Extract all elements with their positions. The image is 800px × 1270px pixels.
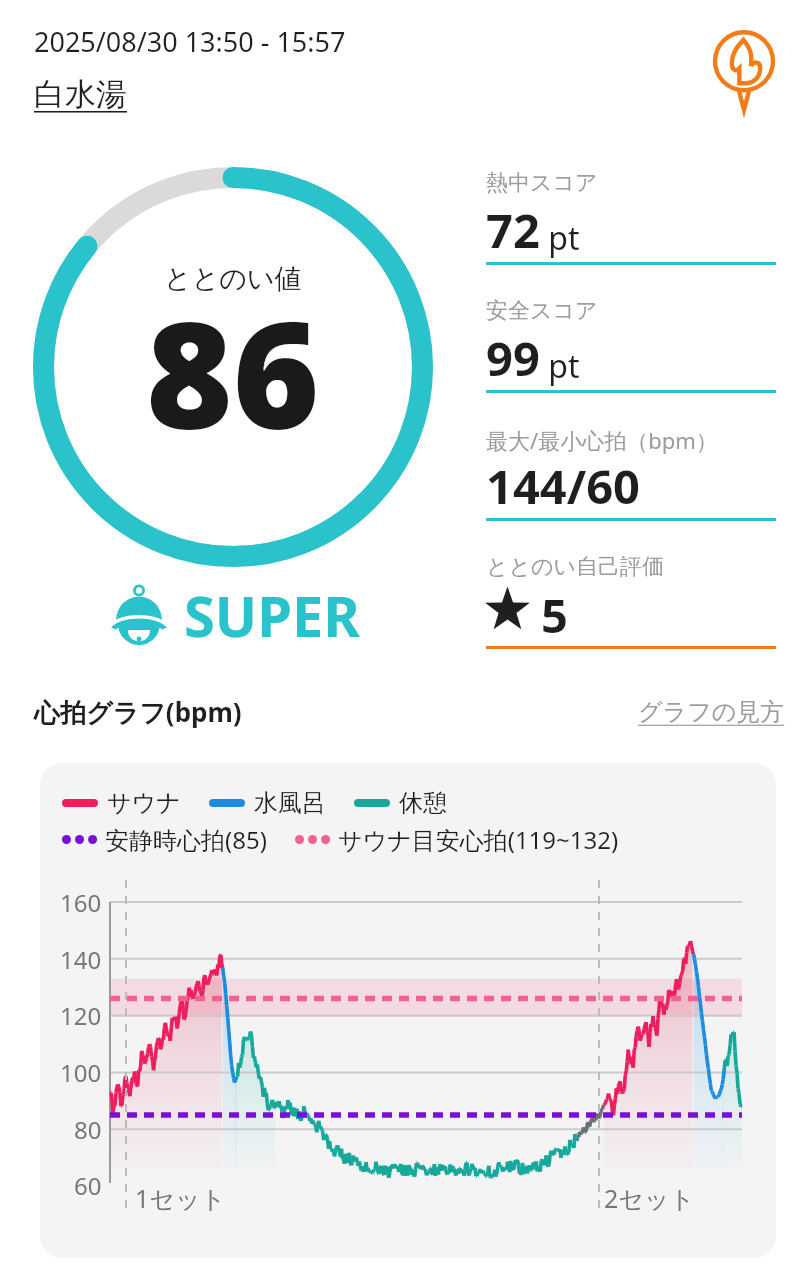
staticText: pt [540,216,580,260]
staticText: ととのい値 [164,262,302,296]
button[interactable]: グラフの見方 [638,697,785,727]
staticText: 白水湯 [34,75,127,114]
staticText: SUPER [184,577,361,653]
staticText: 86 [146,271,320,473]
staticText: サウナ [107,788,181,818]
staticText: 最大/最小心拍（bpm） [486,425,718,455]
staticText: 2025/08/30 13:50 - 15:57 [34,23,346,60]
staticText: 心拍グラフ(bpm) [34,694,242,730]
button[interactable]: Sauna location [702,26,786,110]
staticText: 80 [74,1113,102,1146]
staticText: 熱中スコア [486,169,598,197]
staticText: サウナ目安心拍(119~132) [338,823,619,856]
staticText: 60 [74,1169,102,1202]
staticText: 99 [486,326,540,390]
staticText: 2セット [604,1181,696,1215]
staticText: 160 [60,886,102,919]
staticText: ととのい自己評価 [486,553,665,581]
staticText: 水風呂 [254,788,326,818]
staticText: 140 [60,943,102,976]
staticText: 安全スコア [486,297,598,325]
staticText: 安静時心拍(85) [105,823,267,856]
staticText: 144/60 [486,454,640,518]
staticText: グラフの見方 [638,697,785,727]
staticText: 72 [486,198,540,262]
staticText: 120 [60,999,102,1032]
staticText: 休憩 [399,788,447,818]
staticText: 1セット [135,1181,227,1215]
staticText: 5 [541,583,568,647]
staticText: pt [540,344,580,388]
staticText: 100 [60,1056,102,1089]
